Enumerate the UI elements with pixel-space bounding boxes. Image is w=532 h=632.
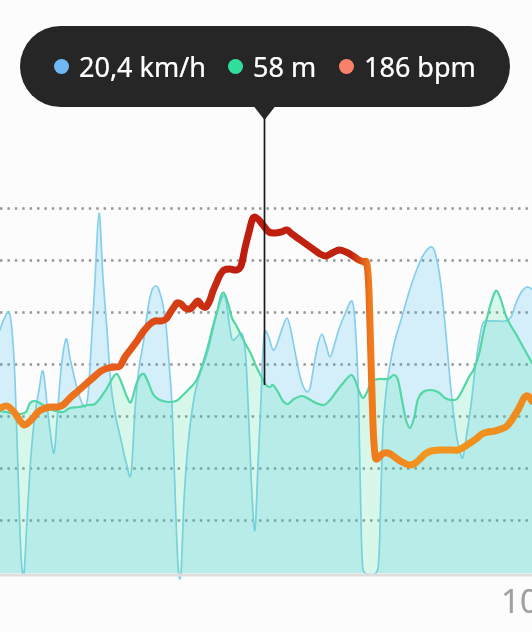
staticText: 10: [501, 578, 532, 623]
staticText: 58 m: [253, 48, 317, 85]
staticText: 20,4 km/h: [79, 48, 206, 85]
staticText: 186 bpm: [364, 48, 476, 85]
button[interactable]: 20,4 km/h: [20, 26, 510, 107]
